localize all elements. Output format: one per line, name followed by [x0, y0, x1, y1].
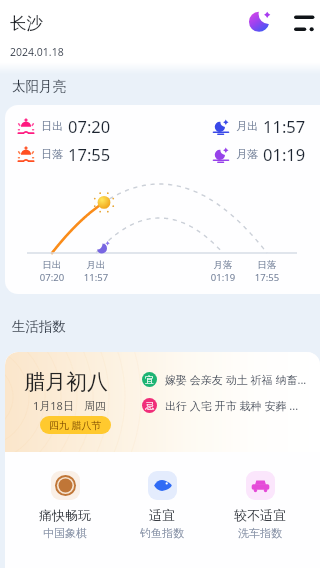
staticText: 日出 — [41, 119, 63, 133]
staticText: 宜 — [145, 374, 154, 385]
staticText: 01:19 — [263, 143, 306, 165]
button[interactable]: 忌 — [142, 398, 299, 413]
staticText: 日落 17:55 — [247, 259, 287, 284]
staticText: 月出 11:57 — [76, 259, 116, 284]
staticText: 周四 — [84, 399, 106, 413]
button[interactable]: 日出 — [5, 105, 320, 294]
staticText: 月出 — [236, 119, 258, 133]
button[interactable]: 较不适宜 — [220, 471, 300, 540]
staticText: 2024.01.18 — [10, 45, 64, 59]
button[interactable]: 适宜 — [122, 471, 202, 540]
staticText: 腊月初八 — [24, 369, 108, 395]
staticText: 太阳月亮 — [12, 78, 66, 95]
staticText: 洗车指数 — [220, 526, 300, 540]
staticText: 17:55 — [68, 143, 111, 165]
staticText: 11:57 — [263, 115, 306, 137]
staticText: 月落 — [236, 147, 258, 161]
staticText: 中国象棋 — [25, 526, 105, 540]
staticText: 日出 07:20 — [32, 259, 72, 284]
staticText: 1月18日 — [33, 398, 74, 413]
staticText: 适宜 — [122, 507, 202, 523]
staticText: 忌 — [145, 400, 154, 411]
staticText: 日落 — [41, 147, 63, 161]
staticText: 嫁娶 会亲友 动土 祈福 纳畜... — [165, 372, 307, 387]
staticText: 出行 入宅 开市 栽种 安葬 ... — [165, 398, 299, 413]
staticText: 长沙 — [10, 13, 43, 34]
button[interactable]: Night mode — [248, 10, 272, 34]
button[interactable]: 宜 — [142, 372, 307, 387]
button[interactable]: 腊月初八 — [5, 352, 320, 452]
staticText: 月落 01:19 — [203, 259, 243, 284]
staticText: 四九 腊八节 — [49, 418, 102, 432]
staticText: 07:20 — [68, 115, 111, 137]
staticText: 钓鱼指数 — [122, 526, 202, 540]
button[interactable]: 痛快畅玩 — [25, 471, 105, 540]
staticText: 生活指数 — [12, 318, 66, 335]
staticText: 较不适宜 — [220, 507, 300, 523]
button[interactable]: Menu — [292, 10, 316, 34]
staticText: 痛快畅玩 — [25, 507, 105, 523]
